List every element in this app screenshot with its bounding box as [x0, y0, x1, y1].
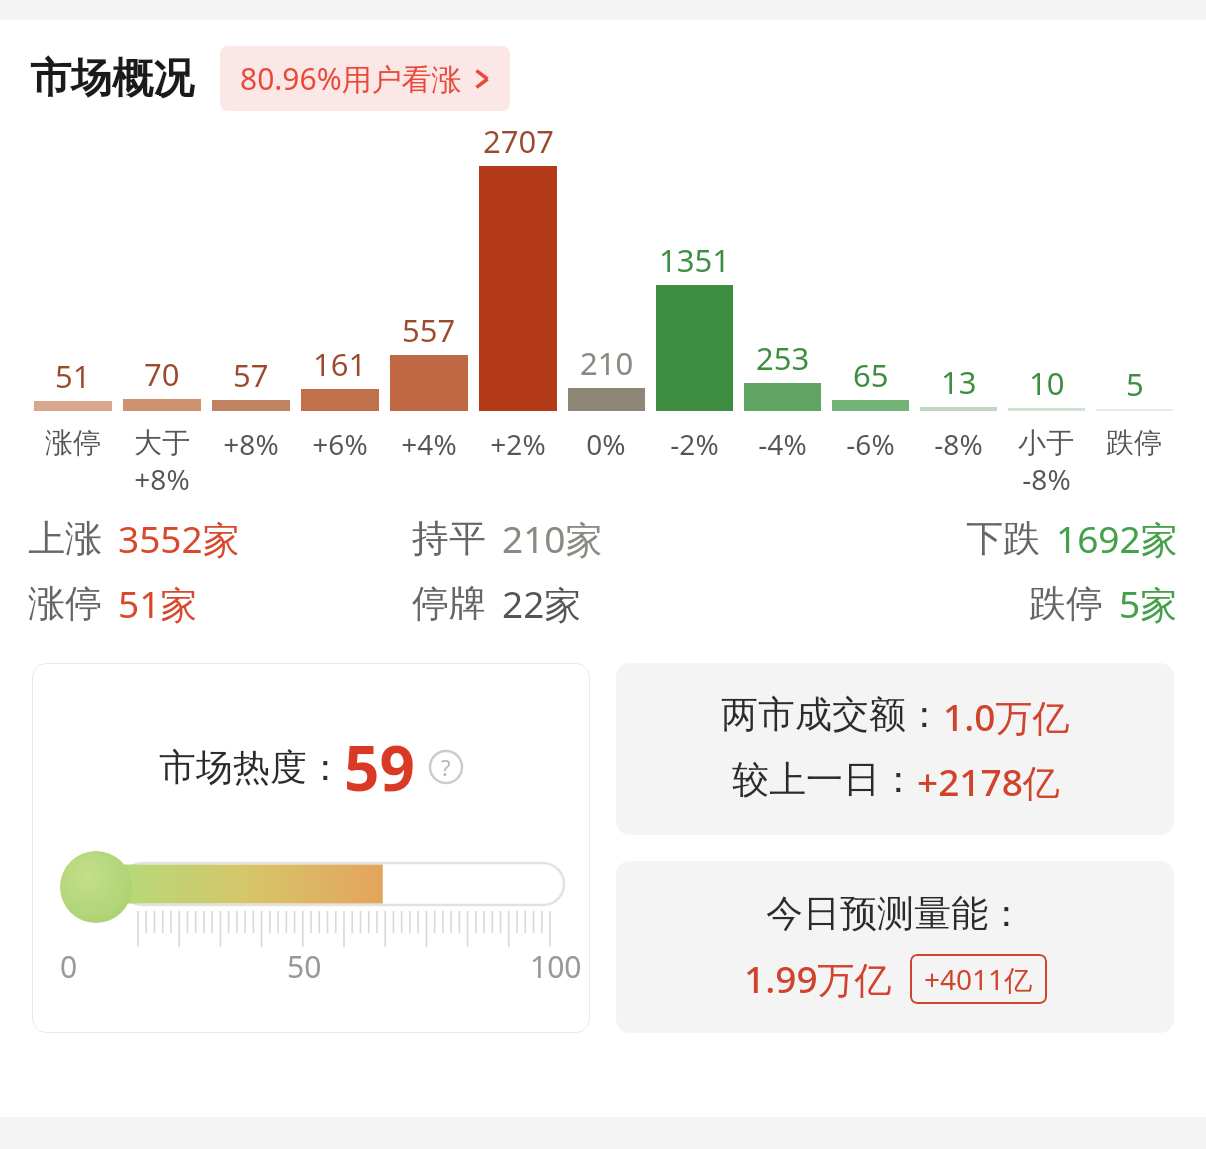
- staticText: 70: [144, 353, 180, 395]
- staticText: 市场概况: [30, 53, 194, 105]
- staticText: 22家: [502, 578, 582, 629]
- staticText: 100: [530, 946, 582, 987]
- staticText: +4011亿: [924, 960, 1033, 998]
- staticText: 两市成交额：: [721, 691, 943, 738]
- staticText: +8%: [134, 460, 190, 498]
- staticText: 涨停: [45, 425, 101, 460]
- staticText: 停牌: [412, 580, 486, 627]
- staticText: 0%: [586, 425, 626, 463]
- staticText: 大于: [134, 425, 190, 460]
- staticText: -6%: [846, 425, 895, 463]
- staticText: 51: [55, 355, 91, 397]
- staticText: 5家: [1119, 578, 1178, 629]
- staticText: 小于: [1018, 425, 1074, 460]
- staticText: 2707: [483, 120, 554, 162]
- staticText: +6%: [312, 425, 368, 463]
- staticText: 557: [402, 309, 456, 351]
- staticText: 1692家: [1056, 513, 1178, 564]
- button[interactable]: 帮助: [429, 750, 463, 784]
- staticText: 市场热度：: [159, 744, 344, 791]
- staticText: 65: [853, 354, 889, 396]
- staticText: 10: [1029, 362, 1065, 404]
- button[interactable]: 两市成交额：: [616, 663, 1174, 835]
- staticText: -8%: [934, 425, 983, 463]
- staticText: 253: [756, 337, 810, 379]
- staticText: 50: [287, 946, 322, 987]
- staticText: +2%: [490, 425, 546, 463]
- staticText: -2%: [670, 425, 719, 463]
- staticText: +2178亿: [917, 756, 1060, 807]
- staticText: 1351: [659, 239, 730, 281]
- staticText: 下跌: [966, 515, 1040, 562]
- staticText: 1.99万亿: [744, 953, 892, 1004]
- staticText: 51家: [118, 578, 198, 629]
- staticText: 较上一日：: [732, 756, 917, 803]
- staticText: 3552家: [118, 513, 240, 564]
- staticText: 5: [1126, 363, 1144, 405]
- staticText: ?: [441, 752, 451, 782]
- staticText: 57: [233, 354, 269, 396]
- staticText: -8%: [1022, 460, 1071, 498]
- staticText: 210: [580, 342, 634, 384]
- staticText: +4%: [401, 425, 457, 463]
- staticText: 涨停: [28, 580, 102, 627]
- button[interactable]: 今日预测量能：: [616, 861, 1174, 1033]
- staticText: 持平: [412, 515, 486, 562]
- staticText: 1.0万亿: [943, 691, 1070, 742]
- button[interactable]: 80.96%用户看涨: [220, 46, 510, 111]
- staticText: +8%: [223, 425, 279, 463]
- staticText: -4%: [758, 425, 807, 463]
- staticText: 今日预测量能：: [766, 890, 1025, 937]
- staticText: 210家: [502, 513, 603, 564]
- staticText: 上涨: [28, 515, 102, 562]
- staticText: 161: [313, 343, 367, 385]
- staticText: 跌停: [1029, 580, 1103, 627]
- staticText: 80.96%用户看涨: [240, 58, 462, 99]
- staticText: 13: [941, 361, 977, 403]
- staticText: 跌停: [1106, 425, 1162, 460]
- button[interactable]: 市场热度：: [32, 663, 590, 1033]
- staticText: 0: [60, 946, 78, 987]
- staticText: 59: [344, 725, 415, 809]
